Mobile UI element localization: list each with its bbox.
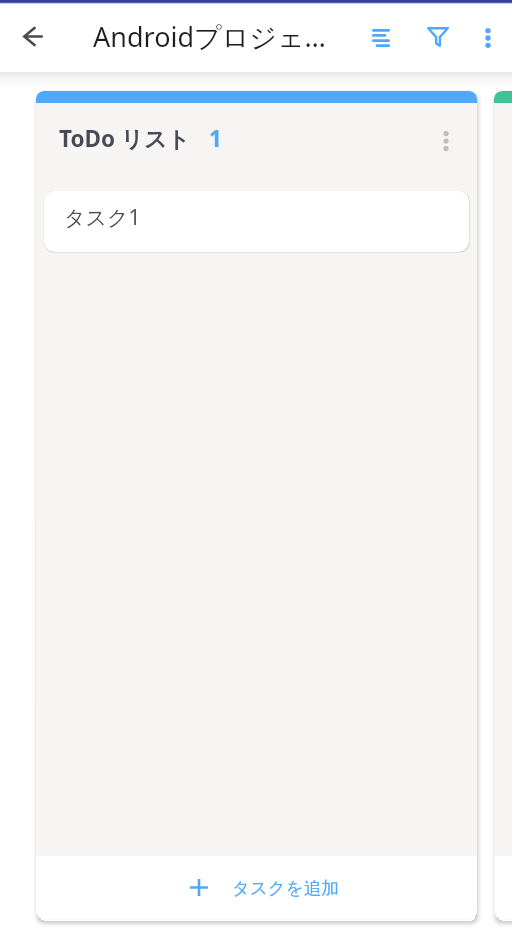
staticText: タスクを追加 <box>232 877 339 899</box>
staticText: Androidプロジェ… <box>93 18 326 55</box>
staticText: 1 <box>209 123 222 154</box>
staticText: ToDo リスト <box>59 123 190 154</box>
button[interactable]: タスクを追加 <box>494 856 512 919</box>
button[interactable]: Sort <box>358 15 404 61</box>
button[interactable]: Back <box>7 12 59 64</box>
button[interactable]: Filter <box>415 15 461 61</box>
button[interactable]: List options <box>427 122 465 160</box>
button[interactable]: More options <box>465 15 511 61</box>
button[interactable]: タスクを追加 <box>36 856 477 919</box>
button[interactable]: タスク1 <box>44 191 469 252</box>
staticText: タスク1 <box>64 203 141 232</box>
